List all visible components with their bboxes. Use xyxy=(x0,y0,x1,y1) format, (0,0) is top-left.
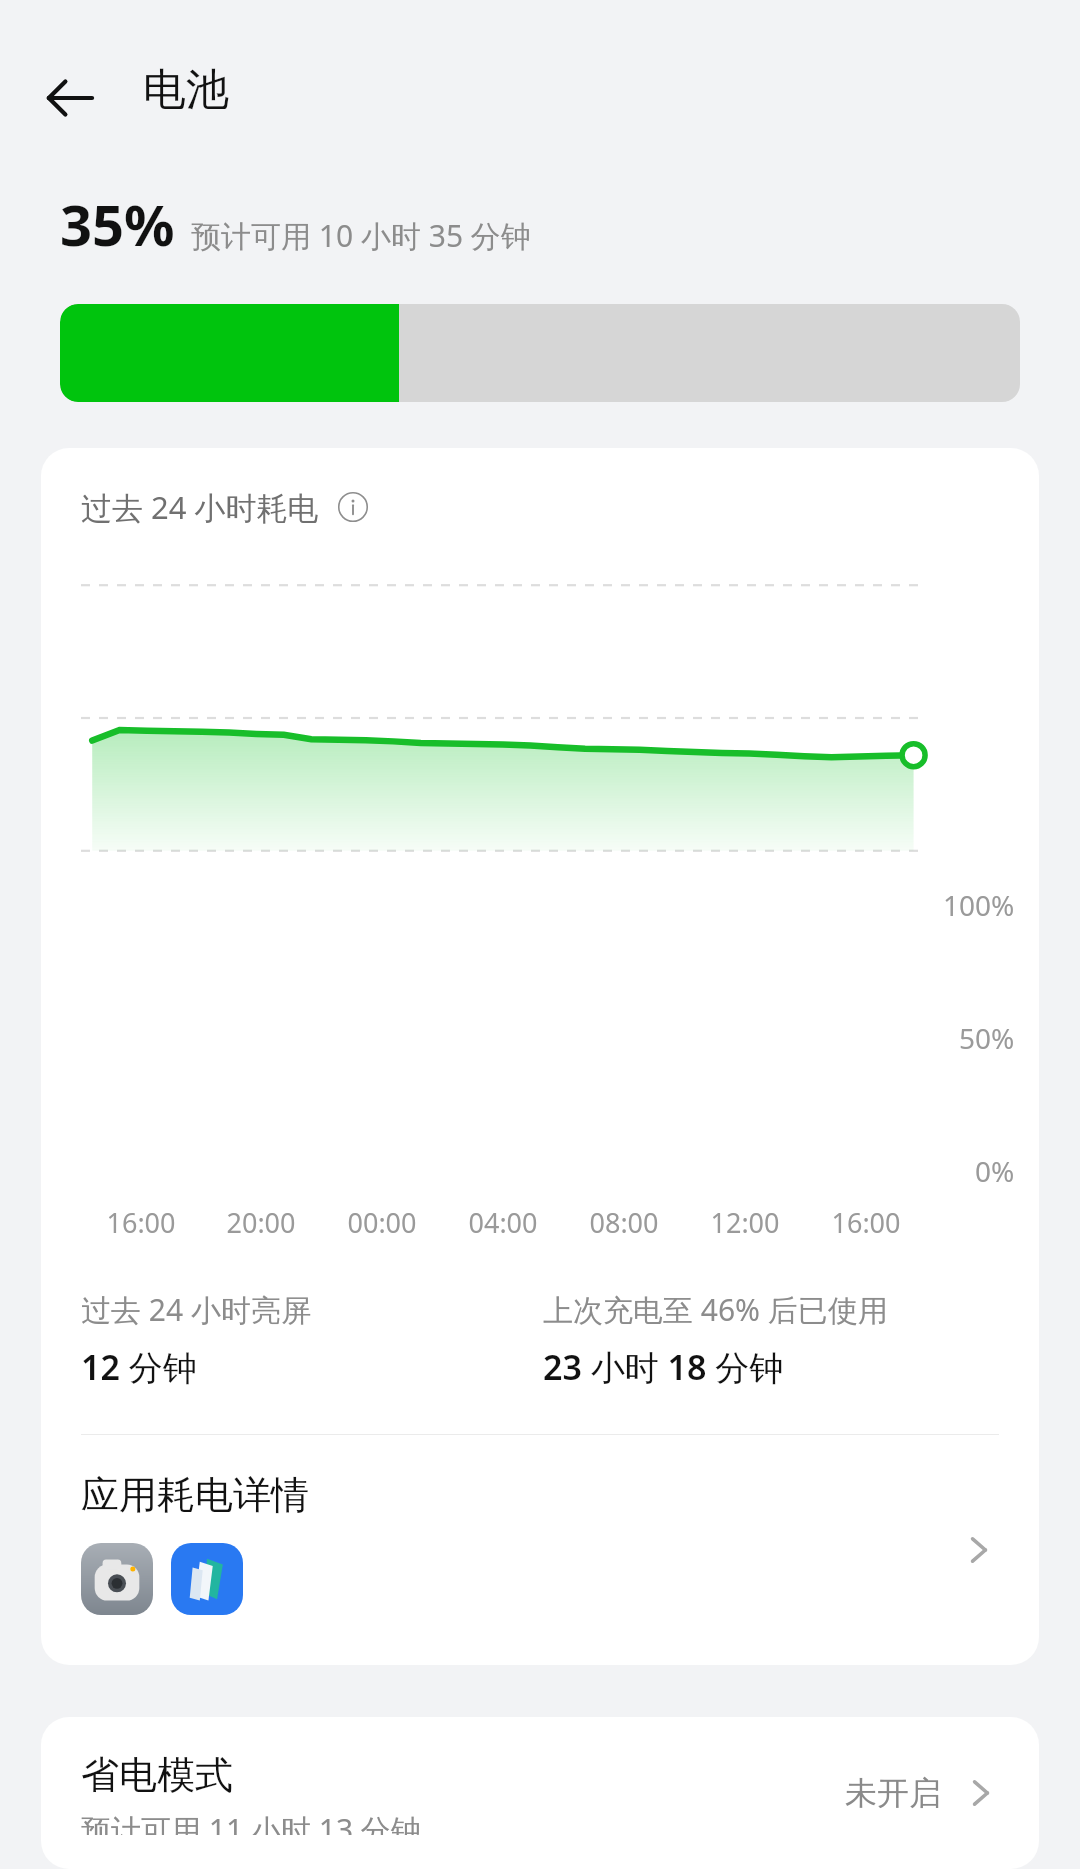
staticText: 电池 xyxy=(143,63,229,117)
staticText: 16:00 xyxy=(831,1204,901,1241)
staticText: 50% xyxy=(959,1019,1015,1057)
staticText: 04:00 xyxy=(468,1204,538,1241)
staticText: 未开启 xyxy=(845,1773,941,1813)
staticText: 过去 24 小时亮屏 xyxy=(81,1289,311,1330)
staticText: 0% xyxy=(975,1152,1015,1190)
button[interactable]: Back xyxy=(34,62,106,134)
staticText: 预计可用 11 小时 13 分钟 xyxy=(81,1809,421,1835)
staticText: 过去 24 小时耗电 xyxy=(81,486,319,528)
button[interactable]: 应用耗电详情 xyxy=(41,1435,1039,1665)
staticText: 省电模式 xyxy=(81,1751,233,1799)
staticText: 16:00 xyxy=(106,1204,176,1241)
button[interactable]: Info xyxy=(333,487,373,527)
staticText: 00:00 xyxy=(347,1204,417,1241)
staticText: 20:00 xyxy=(226,1204,296,1241)
staticText: 08:00 xyxy=(589,1204,659,1241)
staticText: 100% xyxy=(943,886,1015,924)
staticText: 预计可用 10 小时 35 分钟 xyxy=(191,215,531,256)
staticText: 上次充电至 46% 后已使用 xyxy=(543,1289,888,1330)
staticText: 23 小时 18 分钟 xyxy=(543,1344,784,1390)
staticText: 35% xyxy=(60,186,175,262)
staticText: 应用耗电详情 xyxy=(81,1471,309,1519)
staticText: 12:00 xyxy=(710,1204,780,1241)
staticText: 12 分钟 xyxy=(81,1344,197,1390)
button[interactable]: 省电模式 xyxy=(41,1717,1039,1869)
